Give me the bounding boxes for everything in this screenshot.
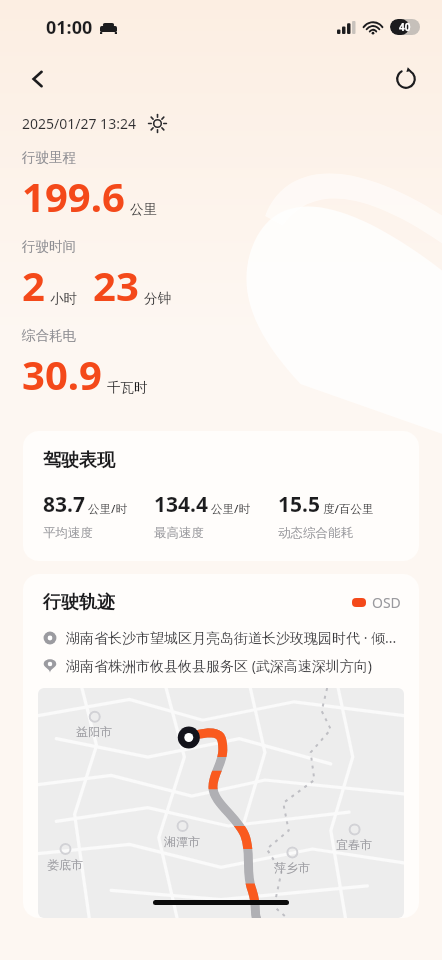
staticText: 行驶轨迹 bbox=[43, 591, 115, 614]
staticText: 23 bbox=[93, 258, 139, 312]
staticText: 01:00 bbox=[46, 15, 93, 40]
staticText: 2 bbox=[22, 258, 45, 312]
staticText: 湖南省长沙市望城区月亮岛街道长沙玫瑰园时代 · 倾... bbox=[66, 628, 397, 647]
staticText: 134.4 bbox=[154, 490, 208, 519]
staticText: 公里/时 bbox=[88, 501, 127, 517]
staticText: 益阳市 bbox=[76, 724, 112, 739]
staticText: 公里 bbox=[130, 201, 157, 218]
staticText: 行驶时间 bbox=[22, 238, 76, 255]
staticText: 综合耗电 bbox=[22, 327, 76, 344]
button[interactable]: Back bbox=[16, 57, 60, 101]
staticText: 30.9 bbox=[22, 347, 102, 401]
staticText: 行驶里程 bbox=[22, 149, 76, 166]
staticText: 83.7 bbox=[43, 490, 85, 519]
staticText: 驾驶表现 bbox=[43, 449, 115, 472]
staticText: 2025/01/27 13:24 bbox=[22, 114, 136, 133]
staticText: 湘潭市 bbox=[164, 834, 200, 849]
staticText: 分钟 bbox=[144, 290, 171, 307]
staticText: 199.6 bbox=[22, 169, 125, 223]
button[interactable]: OSD bbox=[352, 593, 401, 612]
staticText: 娄底市 bbox=[47, 857, 83, 872]
staticText: 15.5 bbox=[278, 490, 320, 519]
button[interactable]: 驾驶表现 bbox=[23, 431, 419, 561]
staticText: 度/百公里 bbox=[323, 501, 374, 517]
staticText: 宜春市 bbox=[336, 837, 372, 852]
staticText: 40 bbox=[399, 20, 411, 34]
staticText: 萍乡市 bbox=[274, 860, 310, 875]
staticText: 平均速度 bbox=[43, 525, 93, 541]
button[interactable]: Refresh bbox=[384, 57, 428, 101]
staticText: 动态综合能耗 bbox=[278, 525, 353, 541]
staticText: 湖南省株洲市攸县攸县服务区 (武深高速深圳方向) bbox=[66, 656, 373, 675]
staticText: OSD bbox=[372, 593, 401, 612]
staticText: 公里/时 bbox=[211, 501, 250, 517]
staticText: 千瓦时 bbox=[107, 379, 148, 396]
staticText: 最高速度 bbox=[154, 525, 204, 541]
staticText: 小时 bbox=[50, 290, 77, 307]
